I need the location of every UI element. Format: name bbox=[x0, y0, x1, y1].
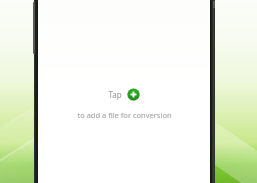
button[interactable]: Add a file for conversion bbox=[127, 88, 140, 101]
button[interactable]: Tap bbox=[102, 86, 146, 103]
staticText: Tap bbox=[108, 89, 122, 100]
other: Volume bbox=[33, 2, 35, 54]
staticText: to add a file for conversion bbox=[77, 110, 172, 120]
